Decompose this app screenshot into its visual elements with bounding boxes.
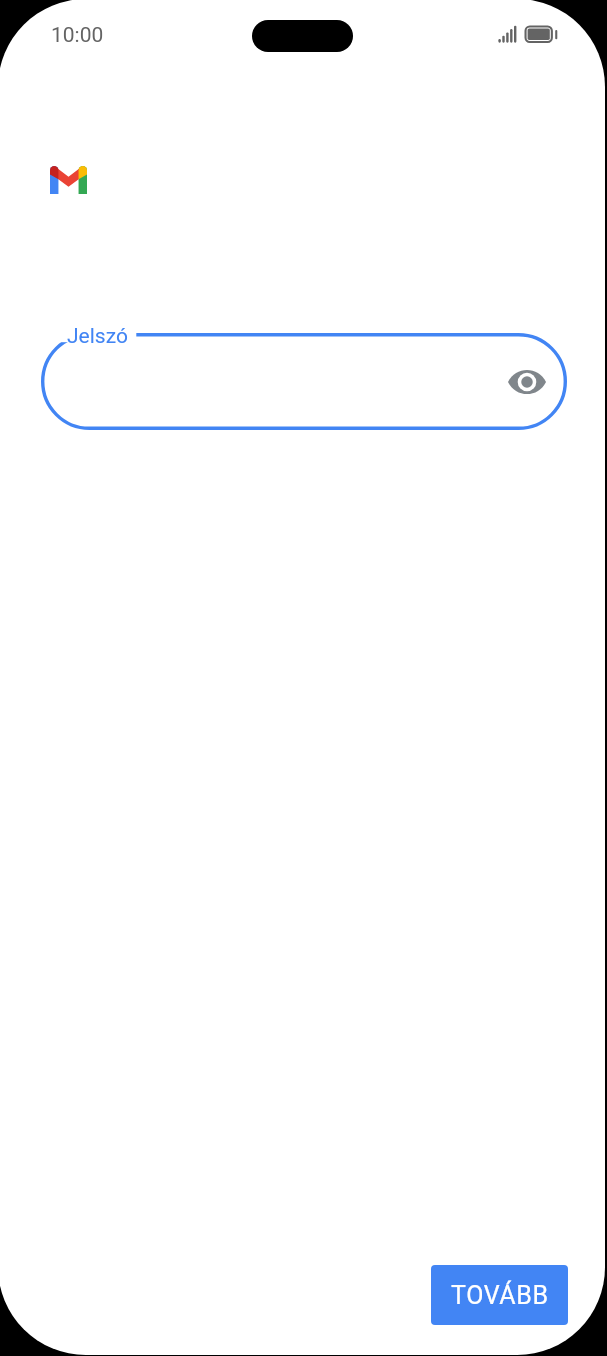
staticText: 10:00 <box>51 23 104 48</box>
button[interactable]: Jelszó <box>41 333 567 430</box>
staticText: TOVÁBB <box>451 1281 549 1310</box>
staticText: Jelszó <box>67 324 128 349</box>
button[interactable]: Show password <box>503 358 551 406</box>
button[interactable]: TOVÁBB <box>431 1265 568 1325</box>
